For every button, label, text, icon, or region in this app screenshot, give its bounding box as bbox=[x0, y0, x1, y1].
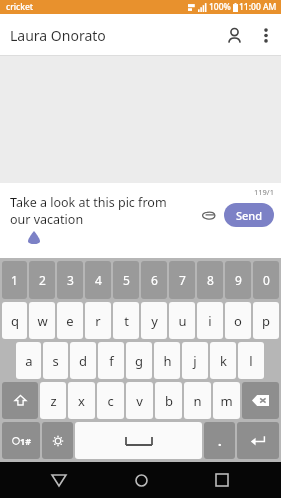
button[interactable]: Home bbox=[119, 462, 163, 498]
button[interactable]: l bbox=[238, 342, 264, 379]
staticText: 7 bbox=[179, 272, 186, 288]
button[interactable]: More options bbox=[251, 20, 281, 50]
button[interactable]: o bbox=[225, 302, 251, 339]
button[interactable]: Attach bbox=[194, 200, 224, 230]
button[interactable]: 2 bbox=[29, 261, 55, 299]
staticText: f bbox=[109, 352, 114, 370]
staticText: 100% bbox=[209, 1, 231, 13]
button[interactable]: h bbox=[154, 342, 180, 379]
button[interactable]: Back bbox=[37, 462, 81, 498]
staticText: v bbox=[136, 392, 143, 410]
staticText: 9 bbox=[235, 272, 242, 288]
button[interactable]: Settings bbox=[42, 422, 73, 459]
staticText: h bbox=[163, 352, 172, 370]
staticText: Laura Onorato bbox=[10, 26, 106, 45]
button[interactable]: w bbox=[29, 302, 55, 339]
button[interactable]: Enter bbox=[237, 422, 279, 459]
staticText: i bbox=[208, 312, 212, 330]
staticText: o bbox=[234, 312, 242, 330]
staticText: b bbox=[165, 392, 173, 410]
staticText: Send bbox=[236, 208, 263, 223]
button[interactable]: r bbox=[85, 302, 111, 339]
button[interactable]: m bbox=[213, 382, 240, 419]
button[interactable]: j bbox=[182, 342, 208, 379]
staticText: m bbox=[220, 392, 233, 410]
button[interactable]: 4 bbox=[85, 261, 111, 299]
button[interactable]: 9 bbox=[225, 261, 251, 299]
staticText: s bbox=[52, 352, 59, 370]
staticText: 6 bbox=[151, 272, 158, 288]
staticText: r bbox=[95, 312, 101, 330]
staticText: c bbox=[107, 392, 114, 410]
staticText: l bbox=[249, 352, 253, 370]
staticText: d bbox=[79, 352, 87, 370]
staticText: 2 bbox=[39, 272, 46, 288]
staticText: 0 bbox=[263, 272, 270, 288]
staticText: Take a look at this pic from our vacatio… bbox=[10, 194, 190, 228]
staticText: cricket bbox=[6, 1, 34, 13]
button[interactable]: Backspace bbox=[242, 382, 279, 419]
button[interactable]: y bbox=[141, 302, 167, 339]
staticText: 4 bbox=[95, 272, 102, 288]
staticText: e bbox=[66, 312, 74, 330]
button[interactable]: 8 bbox=[197, 261, 223, 299]
button[interactable]: e bbox=[57, 302, 83, 339]
button[interactable]: g bbox=[126, 342, 152, 379]
staticText: q bbox=[11, 312, 19, 330]
button[interactable]: 6 bbox=[141, 261, 167, 299]
staticText: 5 bbox=[123, 272, 130, 288]
staticText: 1# bbox=[20, 435, 31, 447]
staticText: g bbox=[135, 352, 143, 370]
staticText: k bbox=[220, 352, 227, 370]
staticText: w bbox=[37, 312, 48, 330]
staticText: t bbox=[124, 312, 129, 330]
button[interactable]: 7 bbox=[169, 261, 195, 299]
staticText: 119/1 bbox=[254, 187, 274, 197]
button[interactable]: Period bbox=[204, 422, 235, 459]
staticText: . bbox=[218, 432, 222, 450]
button[interactable]: b bbox=[155, 382, 182, 419]
button[interactable]: f bbox=[98, 342, 124, 379]
staticText: p bbox=[262, 312, 270, 330]
button[interactable]: Contact details bbox=[217, 18, 251, 52]
button[interactable]: Recents bbox=[200, 462, 244, 498]
staticText: 1 bbox=[11, 272, 18, 288]
staticText: y bbox=[151, 312, 158, 330]
button[interactable]: p bbox=[253, 302, 279, 339]
staticText: z bbox=[50, 392, 57, 410]
button[interactable]: 0 bbox=[253, 261, 279, 299]
button[interactable]: i bbox=[197, 302, 223, 339]
button[interactable]: s bbox=[43, 342, 68, 379]
button[interactable]: t bbox=[113, 302, 139, 339]
button[interactable]: d bbox=[70, 342, 96, 379]
staticText: 11:00 AM bbox=[239, 1, 277, 13]
button[interactable]: 5 bbox=[113, 261, 139, 299]
button[interactable]: Space bbox=[75, 422, 202, 459]
staticText: x bbox=[78, 392, 85, 410]
staticText: j bbox=[193, 352, 197, 370]
staticText: 8 bbox=[207, 272, 214, 288]
button[interactable]: v bbox=[126, 382, 153, 419]
staticText: a bbox=[25, 352, 33, 370]
button[interactable]: Shift bbox=[2, 382, 38, 419]
staticText: 3 bbox=[67, 272, 74, 288]
button[interactable]: Symbols bbox=[2, 422, 40, 459]
button[interactable]: u bbox=[169, 302, 195, 339]
button[interactable]: q bbox=[2, 302, 27, 339]
button[interactable]: k bbox=[210, 342, 236, 379]
staticText: u bbox=[178, 312, 187, 330]
button[interactable]: Send bbox=[224, 203, 274, 227]
button[interactable]: x bbox=[68, 382, 95, 419]
staticText: n bbox=[193, 392, 202, 410]
button[interactable]: z bbox=[40, 382, 66, 419]
button[interactable]: 1 bbox=[2, 261, 27, 299]
button[interactable]: c bbox=[97, 382, 124, 419]
button[interactable]: n bbox=[184, 382, 211, 419]
button[interactable]: a bbox=[16, 342, 41, 379]
button[interactable]: 3 bbox=[57, 261, 83, 299]
